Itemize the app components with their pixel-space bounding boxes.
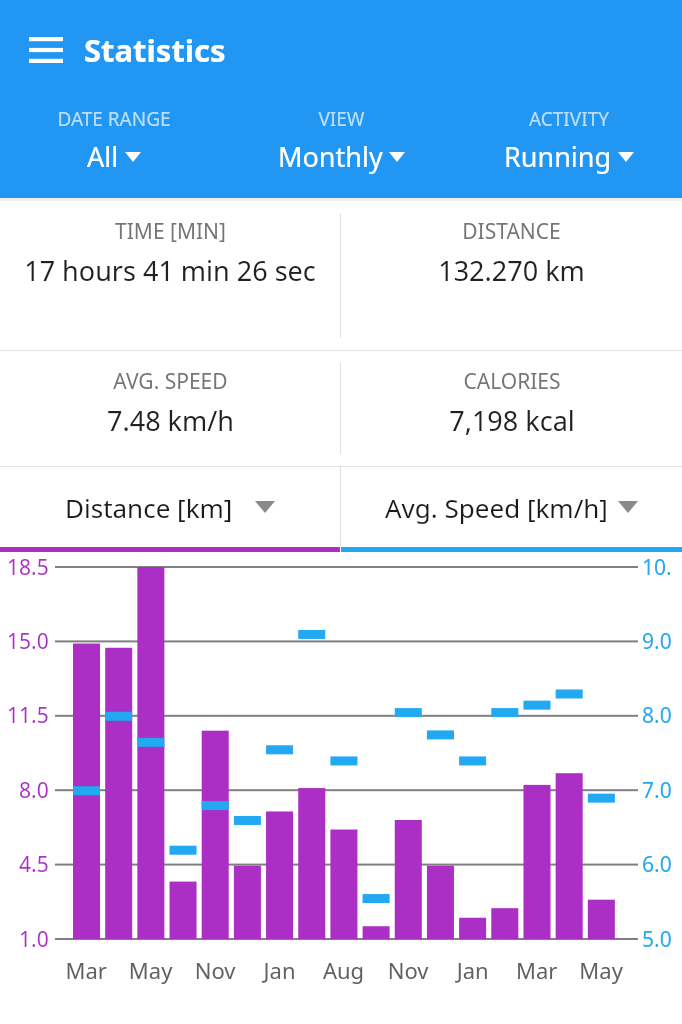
button[interactable]: Distance [km] — [0, 467, 340, 552]
staticText: 7,198 kcal — [449, 402, 575, 439]
button[interactable]: AVG. SPEED — [0, 351, 340, 466]
staticText: AVG. SPEED — [113, 367, 228, 396]
staticText: Statistics — [84, 29, 226, 71]
button[interactable]: Open navigation drawer — [22, 26, 70, 74]
staticText: TIME [MIN] — [115, 217, 226, 246]
staticText: CALORIES — [463, 367, 561, 396]
button[interactable]: DISTANCE — [341, 201, 682, 350]
staticText: DATE RANGE — [57, 106, 171, 132]
staticText: DISTANCE — [462, 217, 561, 246]
staticText: ACTIVITY — [529, 106, 609, 132]
button[interactable]: TIME [MIN] — [0, 201, 340, 350]
staticText: 132.270 km — [438, 252, 585, 289]
staticText: All — [87, 138, 119, 175]
staticText: 7.48 km/h — [107, 402, 234, 439]
staticText: 17 hours 41 min 26 sec — [24, 252, 316, 289]
staticText: Running — [504, 138, 612, 175]
button[interactable]: CALORIES — [341, 351, 682, 466]
button[interactable]: DATE RANGE — [0, 100, 228, 175]
button[interactable]: VIEW — [228, 100, 455, 175]
staticText: VIEW — [318, 106, 365, 132]
staticText: Avg. Speed [km/h] — [385, 490, 608, 525]
button[interactable]: ACTIVITY — [455, 100, 682, 175]
staticText: Monthly — [278, 138, 383, 175]
staticText: Distance [km] — [65, 490, 233, 525]
button[interactable]: Avg. Speed [km/h] — [341, 467, 682, 552]
